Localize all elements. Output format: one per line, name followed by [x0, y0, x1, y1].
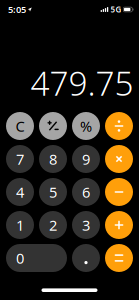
button[interactable]: 2	[39, 211, 67, 239]
button[interactable]: 7	[6, 145, 34, 173]
staticText: 479.75	[30, 61, 133, 105]
button[interactable]: Minus	[105, 178, 133, 206]
button[interactable]: 1	[6, 211, 34, 239]
staticText: %	[80, 116, 92, 136]
staticText: 6	[82, 182, 90, 202]
staticText: 5:05	[8, 3, 26, 16]
button[interactable]: Equals	[105, 244, 133, 272]
staticText: 5G	[110, 4, 121, 15]
staticText: 7	[16, 149, 24, 169]
button[interactable]: Divide	[105, 112, 133, 140]
button[interactable]: 3	[72, 211, 100, 239]
button[interactable]: C	[6, 112, 34, 140]
button[interactable]: Plus	[105, 211, 133, 239]
button[interactable]: Toggle sign	[39, 112, 67, 140]
button[interactable]: %	[72, 112, 100, 140]
staticText: 8	[49, 149, 57, 169]
staticText: 9	[82, 149, 90, 169]
staticText: 2	[49, 215, 57, 235]
button[interactable]: 9	[72, 145, 100, 173]
button[interactable]: 6	[72, 178, 100, 206]
staticText: C	[15, 116, 24, 136]
button[interactable]: 4	[6, 178, 34, 206]
staticText: 3	[82, 215, 90, 235]
button[interactable]: Decimal point	[72, 244, 100, 272]
button[interactable]: 8	[39, 145, 67, 173]
staticText: 4	[16, 182, 24, 202]
staticText: 5	[49, 182, 57, 202]
staticText: 1	[16, 215, 24, 235]
button[interactable]: Multiply	[105, 145, 133, 173]
button[interactable]: 5	[39, 178, 67, 206]
button[interactable]: 0	[6, 244, 67, 272]
staticText: 0	[16, 248, 24, 268]
